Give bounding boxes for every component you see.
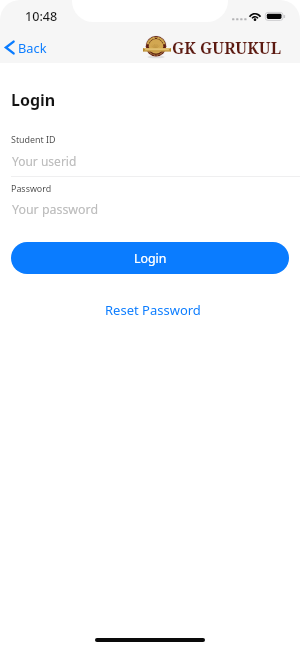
staticText: Password	[11, 182, 52, 194]
staticText: Your password	[12, 201, 99, 218]
staticText: Student ID	[11, 133, 56, 145]
staticText: Your userid	[12, 153, 77, 169]
staticText: 10:48	[25, 8, 58, 25]
other: Status icons	[231, 10, 287, 21]
button[interactable]: Login	[11, 242, 289, 274]
staticText: Login	[134, 250, 167, 267]
staticText: Reset Password	[105, 301, 201, 319]
button[interactable]: Back	[0, 37, 57, 58]
staticText: Login	[11, 89, 56, 111]
staticText: Back	[18, 39, 47, 56]
button[interactable]: Reset Password	[95, 298, 211, 322]
staticText: GK GURUKUL	[172, 37, 282, 59]
